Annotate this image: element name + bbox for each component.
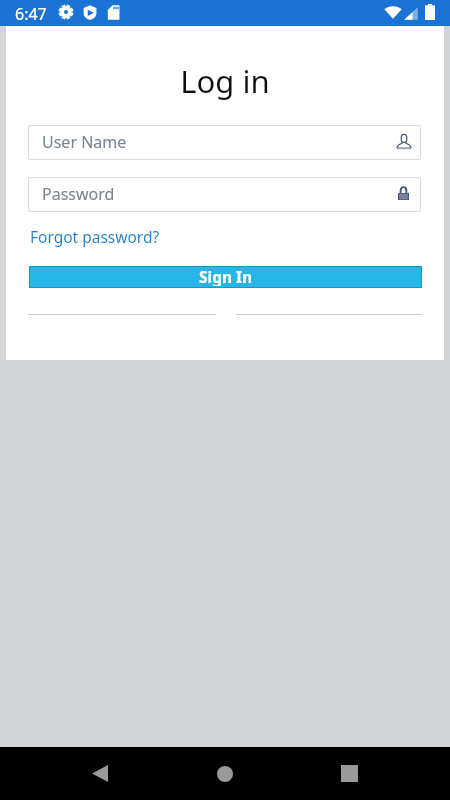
button[interactable]: Back [80,747,120,800]
button[interactable]: Home [205,747,245,800]
button[interactable]: Forgot password? [28,224,162,249]
staticText: Password [42,183,115,205]
staticText: Log in [6,60,444,102]
button[interactable]: Password [28,177,421,212]
button[interactable]: User Name [28,125,421,160]
staticText: Sign In [199,266,253,286]
staticText: User Name [42,131,127,153]
button[interactable]: Sign In [30,267,421,287]
button[interactable]: Recent apps [329,747,369,800]
staticText: 6:47 [15,3,47,25]
staticText: Forgot password? [30,226,160,247]
